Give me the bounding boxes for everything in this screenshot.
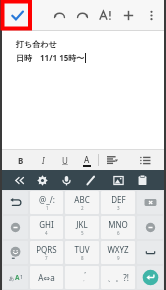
button[interactable]: Redo	[71, 0, 94, 30]
staticText: B	[18, 155, 24, 166]
staticText: A	[15, 273, 20, 282]
button[interactable]: Voice input	[54, 170, 78, 190]
button[interactable]: Cursor left	[3, 216, 28, 239]
staticText: TUV	[74, 244, 90, 255]
button[interactable]: ABC	[65, 191, 99, 214]
button[interactable]: GHI	[30, 216, 63, 239]
staticText: 1	[46, 205, 49, 211]
staticText: PQRS	[36, 244, 57, 255]
button[interactable]: Text format	[94, 0, 117, 30]
staticText: ゜	[80, 280, 85, 286]
staticText: U	[62, 155, 68, 166]
button[interactable]: Done	[2, 0, 32, 30]
staticText: WXYZ	[107, 244, 129, 255]
staticText: 7	[45, 255, 48, 261]
button[interactable]: I	[32, 150, 54, 170]
button[interactable]: B	[10, 150, 32, 170]
staticText: 8	[81, 255, 84, 261]
staticText: A⇔a	[38, 272, 55, 283]
button[interactable]: Delete	[137, 191, 163, 214]
button[interactable]: JKL	[65, 216, 99, 239]
button[interactable]: ゛	[65, 266, 99, 289]
button[interactable]: U	[54, 150, 76, 170]
staticText: 2	[81, 205, 84, 211]
button[interactable]: TUV	[65, 241, 99, 264]
staticText: 4	[45, 230, 48, 236]
staticText: I	[42, 155, 45, 166]
button[interactable]: Text color	[76, 150, 98, 170]
button[interactable]: Cursor right	[137, 216, 163, 239]
button[interactable]: Handwriting	[78, 170, 102, 190]
button[interactable]: WXYZ	[101, 241, 135, 264]
button[interactable]: Settings	[30, 170, 54, 190]
button[interactable]: Undo	[3, 191, 28, 214]
staticText: @_/:	[39, 194, 55, 205]
staticText: 3	[117, 205, 120, 211]
button[interactable]: More options	[140, 0, 163, 30]
staticText: GHI	[39, 219, 54, 230]
button[interactable]: 、。?!	[101, 266, 135, 289]
button[interactable]: Collapse	[6, 170, 30, 190]
staticText: 6	[117, 230, 120, 236]
button[interactable]: MNO	[101, 216, 135, 239]
button[interactable]: Undo	[48, 0, 71, 30]
button[interactable]: A⇔a	[30, 266, 63, 289]
staticText: ABC	[74, 194, 90, 205]
button[interactable]: Image	[106, 170, 130, 190]
button[interactable]: Enter	[137, 266, 163, 289]
staticText: あ	[9, 275, 15, 281]
staticText: 日時 11/1 15時〜	[16, 52, 85, 63]
staticText: JKL	[76, 219, 88, 230]
button[interactable]: Add	[117, 0, 140, 30]
button[interactable]: DEF	[101, 191, 135, 214]
staticText: A	[84, 154, 90, 165]
button[interactable]: Clipboard	[130, 170, 154, 190]
button[interactable]: Alignment	[99, 150, 125, 170]
staticText: 5	[81, 230, 84, 236]
staticText: MNO	[108, 219, 128, 230]
button[interactable]: Input mode	[3, 266, 28, 289]
button[interactable]: @_/:	[30, 191, 63, 214]
staticText: 1	[20, 274, 23, 281]
button[interactable]: PQRS	[30, 241, 63, 264]
staticText: DEF	[111, 194, 126, 205]
staticText: 9	[117, 255, 120, 261]
button[interactable]: Bulleted list	[130, 150, 160, 170]
button[interactable]: Space	[137, 241, 163, 264]
staticText: 、。?!	[107, 272, 129, 283]
staticText: ゛	[78, 270, 87, 280]
button[interactable]: 打ち合わせ	[16, 39, 57, 49]
button[interactable]: Emoji	[3, 241, 28, 264]
